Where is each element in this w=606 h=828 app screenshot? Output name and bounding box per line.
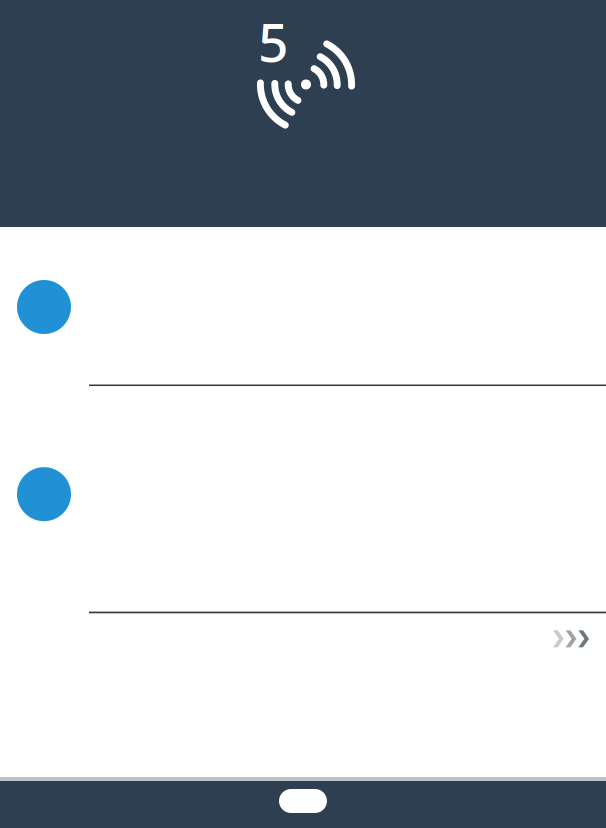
button[interactable]: Continue — [547, 624, 595, 653]
staticText: 5 — [258, 6, 289, 77]
button[interactable]: List item 2 — [0, 386, 606, 613]
button[interactable]: List item 1 — [0, 227, 606, 386]
